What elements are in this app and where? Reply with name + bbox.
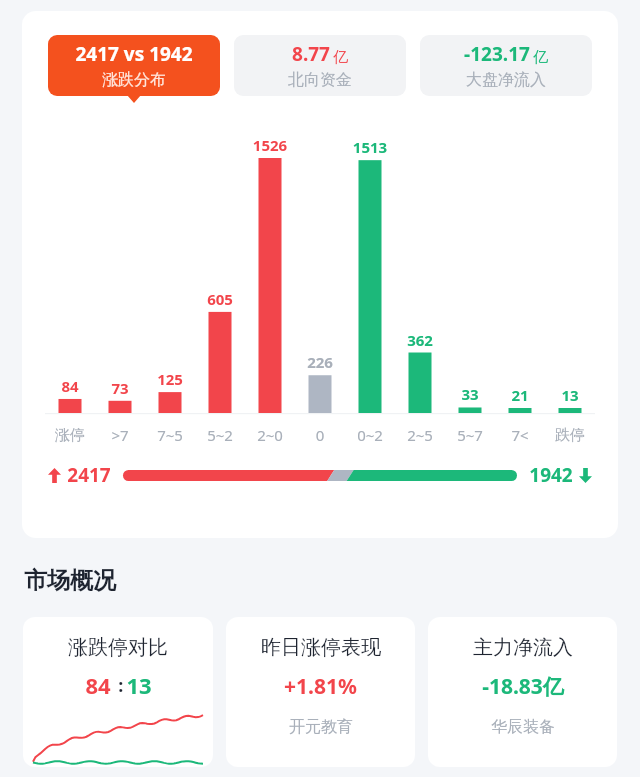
staticText: 21	[495, 385, 545, 405]
staticText: 1513	[345, 137, 395, 157]
staticText: 125	[145, 369, 195, 389]
staticText: 市场概况	[24, 566, 116, 595]
staticText: 84	[45, 376, 95, 396]
staticText: 7<	[495, 425, 545, 445]
button[interactable]: 主力净流入	[428, 617, 617, 767]
other: Down	[579, 468, 592, 483]
staticText: 亿	[533, 48, 548, 67]
button[interactable]: 昨日涨停表现	[226, 617, 415, 767]
staticText: 1942	[529, 462, 573, 488]
staticText: 33	[445, 384, 495, 404]
button[interactable]: 涨跌停对比	[23, 617, 213, 767]
staticText: 605	[195, 289, 245, 309]
staticText: 涨跌分布	[102, 70, 166, 90]
staticText: 华辰装备	[491, 717, 555, 737]
staticText: 2417	[67, 462, 111, 488]
staticText: 5~7	[445, 425, 495, 445]
staticText: +1.81%	[284, 672, 357, 701]
staticText: 2~5	[395, 425, 445, 445]
staticText: :	[111, 673, 126, 698]
staticText: 1526	[245, 135, 295, 155]
staticText: 5~2	[195, 425, 245, 445]
staticText: -18.83亿	[482, 672, 564, 701]
staticText: 跌停	[545, 426, 595, 445]
other: Up	[48, 468, 61, 483]
staticText: >7	[95, 425, 145, 445]
staticText: 昨日涨停表现	[261, 635, 381, 660]
staticText: -123.17	[464, 41, 530, 67]
staticText: 8.77	[292, 41, 330, 67]
button[interactable]: 8.77	[234, 35, 406, 96]
staticText: 7~5	[145, 425, 195, 445]
staticText: 362	[395, 330, 445, 350]
staticText: 大盘净流入	[466, 70, 546, 90]
staticText: 84	[85, 670, 111, 700]
staticText: 亿	[333, 48, 348, 67]
staticText: 73	[95, 378, 145, 398]
button[interactable]: 2417 vs 1942	[48, 35, 220, 96]
staticText: 0~2	[345, 425, 395, 445]
staticText: 2~0	[245, 425, 295, 445]
button[interactable]: -123.17	[420, 35, 592, 96]
staticText: 开元教育	[289, 717, 353, 737]
staticText: 13	[545, 385, 595, 405]
staticText: 主力净流入	[473, 635, 573, 660]
staticText: 0	[295, 425, 345, 445]
staticText: 13	[126, 670, 152, 700]
staticText: 北向资金	[288, 70, 352, 90]
staticText: 2417 vs 1942	[75, 41, 193, 67]
staticText: 涨跌停对比	[68, 635, 168, 660]
staticText: 226	[295, 352, 345, 372]
staticText: 涨停	[45, 426, 95, 445]
